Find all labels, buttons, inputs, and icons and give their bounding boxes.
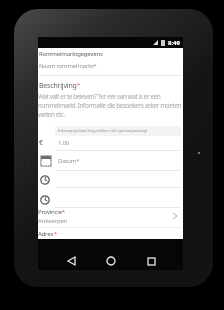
button[interactable]: Antwerpen — [38, 216, 180, 226]
staticText: Naam rommelmarkt* — [39, 62, 97, 70]
staticText: Provincie — [38, 208, 62, 216]
staticText: Datum* — [58, 157, 80, 165]
button[interactable]: Datum* — [39, 154, 181, 172]
button[interactable] — [144, 254, 158, 268]
staticText: * — [54, 230, 58, 238]
button[interactable]: Naam rommelmarkt* — [39, 62, 184, 70]
staticText: Rommelmarktgegevens — [39, 50, 103, 58]
staticText: Adres — [38, 230, 54, 238]
button[interactable] — [39, 173, 181, 189]
button[interactable] — [64, 254, 78, 268]
staticText: Wat valt er te beleven? Ter ere van wat … — [38, 92, 183, 119]
button[interactable] — [39, 193, 181, 209]
staticText: 1.00 — [58, 139, 70, 147]
staticText: Beschrijving — [39, 81, 77, 91]
staticText: * — [77, 81, 81, 89]
staticText: Inkomprijs(laat leeg indien niet van toe… — [58, 128, 148, 133]
staticText: 8:49 — [168, 39, 180, 47]
button[interactable]: € — [39, 137, 181, 151]
button[interactable] — [104, 254, 118, 268]
staticText: € — [39, 138, 44, 148]
staticText: Antwerpen — [38, 217, 68, 225]
staticText: * — [62, 208, 66, 216]
